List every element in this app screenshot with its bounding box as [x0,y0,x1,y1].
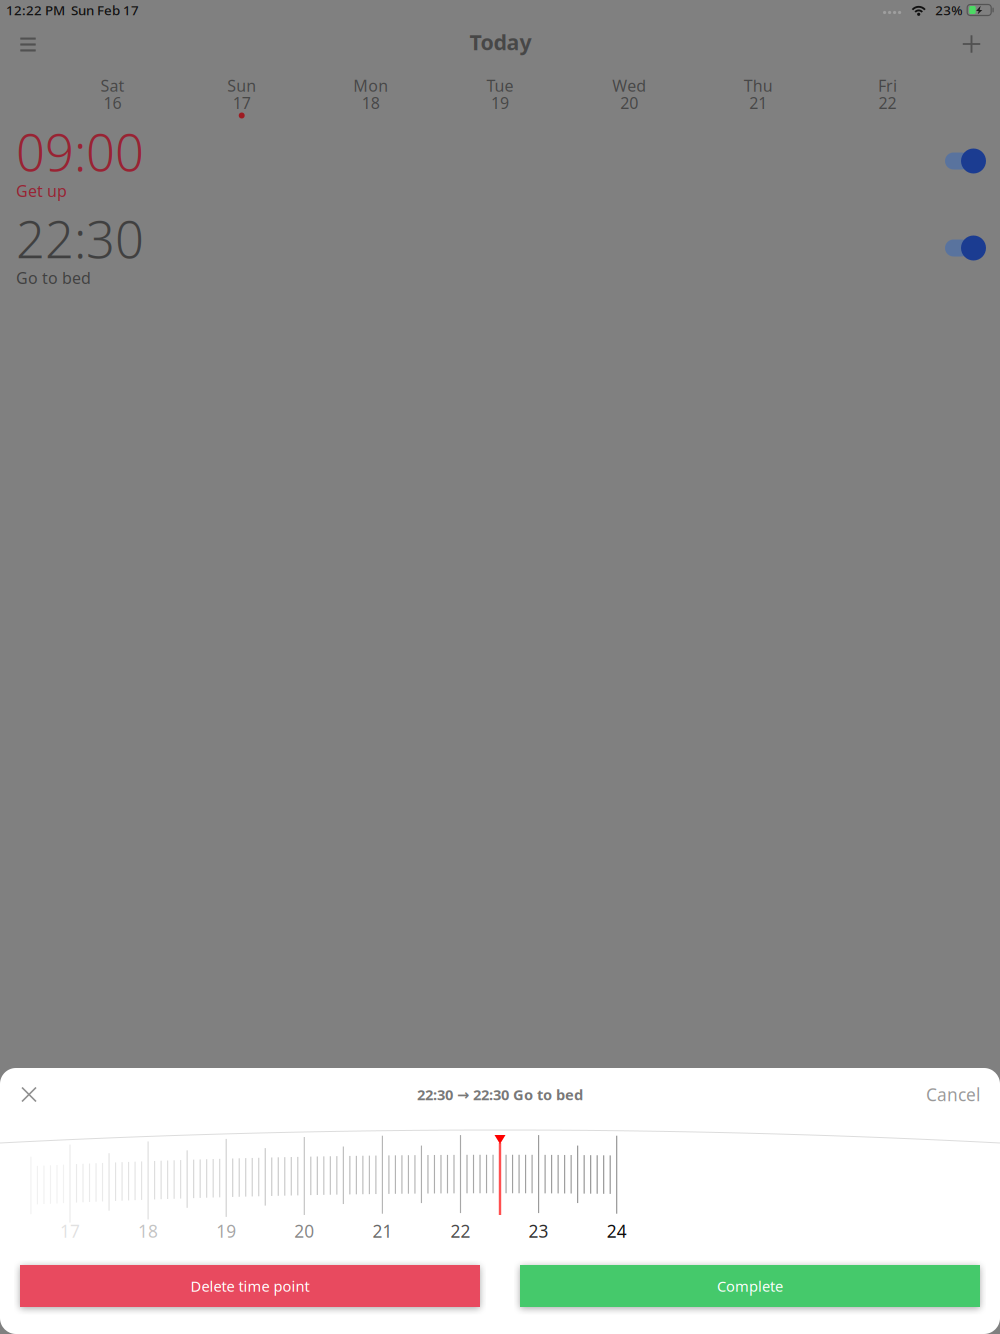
staticText: Complete [717,1276,783,1296]
staticText: Sun Feb 17 [71,1,139,19]
staticText: 09:00 [16,118,144,185]
staticText: Thu [744,75,773,96]
staticText: Fri [878,75,897,96]
button[interactable]: Delete time point [20,1265,480,1307]
staticText: 22 [450,1219,470,1242]
staticText: 23 [529,1219,549,1242]
button[interactable]: Complete [520,1265,980,1307]
staticText: Delete time point [190,1276,309,1296]
staticText: 23% [935,1,962,19]
button[interactable]: Close [0,1071,58,1117]
staticText: Mon [353,75,388,96]
button[interactable]: 09:00 [0,112,1000,199]
staticText: 18 [138,1219,158,1242]
button[interactable]: Fri [823,64,952,112]
staticText: 20 [294,1219,314,1242]
staticText: 17 [233,92,251,113]
button[interactable]: Cancel [926,1071,1000,1117]
staticText: Wed [612,75,646,96]
staticText: 17 [60,1219,80,1242]
staticText: 19 [216,1219,236,1242]
button[interactable]: Thu [694,64,823,112]
staticText: 20 [620,92,638,113]
staticText: 21 [749,92,767,113]
staticText: 22:30 [16,205,144,272]
staticText: 16 [104,92,122,113]
button[interactable]: Wed [565,64,694,112]
staticText: Today [469,28,531,56]
staticText: 22 [878,92,896,113]
button[interactable]: Mon [306,64,435,112]
staticText: 24 [607,1219,627,1242]
staticText: 19 [491,92,509,113]
staticText: 21 [372,1219,392,1242]
button[interactable]: Sat [48,64,177,112]
staticText: 12:22 PM [6,1,65,19]
staticText: Sun [227,75,256,96]
staticText: Tue [486,75,513,96]
button[interactable]: 22:30 [0,199,1000,286]
staticText: Get up [16,180,67,201]
button[interactable]: Add [954,22,992,62]
button[interactable]: Menu [9,22,47,62]
staticText: Go to bed [16,267,91,288]
staticText: 22:30 → 22:30 Go to bed [417,1085,583,1104]
button[interactable]: Tue [435,64,564,112]
staticText: Sat [101,75,125,96]
staticText: 18 [362,92,380,113]
staticText: Cancel [926,1083,980,1106]
button[interactable]: Sun [177,64,306,112]
